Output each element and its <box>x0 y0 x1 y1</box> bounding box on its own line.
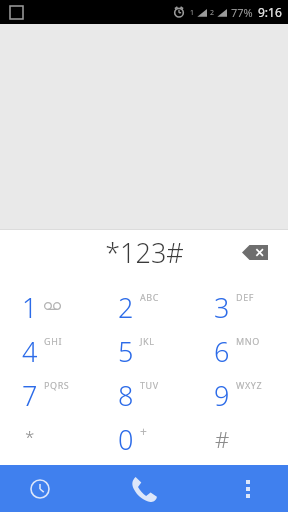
staticText: GHI <box>44 335 63 347</box>
staticText: PQRS <box>44 379 70 391</box>
staticText: 2 <box>118 289 134 326</box>
staticText: *123# <box>105 234 184 271</box>
staticText: 8 <box>118 377 134 414</box>
staticText: + <box>140 423 148 439</box>
staticText: 1 <box>190 8 195 18</box>
staticText: 4 <box>22 333 38 370</box>
button[interactable]: * <box>0 414 96 458</box>
button[interactable]: Backspace <box>236 233 274 271</box>
staticText: 77% <box>231 5 253 20</box>
staticText: 2 <box>210 8 215 18</box>
staticText: 6 <box>214 333 230 370</box>
button[interactable]: 4 <box>0 326 96 370</box>
button[interactable]: 2 <box>96 282 192 326</box>
staticText: MNO <box>236 335 260 347</box>
staticText: 1 <box>22 289 38 326</box>
button[interactable]: 7 <box>0 370 96 414</box>
staticText: 9:16 <box>258 4 282 20</box>
button[interactable]: 5 <box>96 326 192 370</box>
button[interactable]: More options <box>208 465 288 512</box>
staticText: # <box>215 424 230 454</box>
button[interactable]: 9 <box>192 370 288 414</box>
staticText: 9 <box>214 377 230 414</box>
button[interactable]: 3 <box>192 282 288 326</box>
button[interactable]: Call history <box>0 465 80 512</box>
button[interactable]: Call <box>80 465 208 512</box>
staticText: JKL <box>140 335 155 347</box>
button[interactable]: 0 <box>96 414 192 458</box>
staticText: * <box>25 425 35 448</box>
staticText: ABC <box>140 291 160 303</box>
staticText: 0 <box>118 421 134 458</box>
staticText: DEF <box>236 291 255 303</box>
button[interactable]: 6 <box>192 326 288 370</box>
button[interactable]: # <box>192 414 288 458</box>
button[interactable]: 1 <box>0 282 96 326</box>
staticText: TUV <box>140 379 159 391</box>
staticText: 7 <box>22 377 38 414</box>
staticText: WXYZ <box>236 379 263 391</box>
staticText: 5 <box>118 333 134 370</box>
staticText: 3 <box>214 289 230 326</box>
button[interactable]: 8 <box>96 370 192 414</box>
